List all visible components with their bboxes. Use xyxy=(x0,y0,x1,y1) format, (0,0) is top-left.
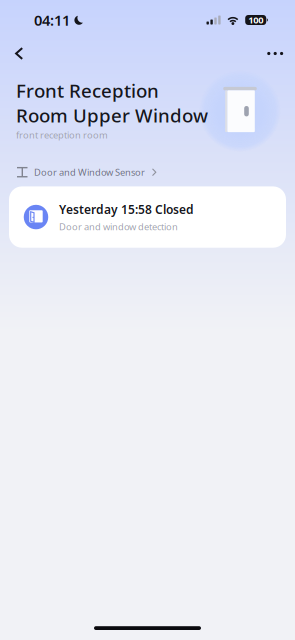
staticText: front reception room xyxy=(16,129,108,141)
staticText: 04:11 xyxy=(34,10,70,30)
staticText: Front Reception xyxy=(16,78,159,103)
staticText: Yesterday 15:58 Closed xyxy=(59,201,194,217)
staticText: Room Upper Window xyxy=(16,103,208,128)
button[interactable]: Door and Window Sensor xyxy=(0,152,171,180)
button[interactable]: More options xyxy=(254,37,295,70)
staticText: Door and window detection xyxy=(59,220,178,233)
button[interactable]: Yesterday 15:58 Closed xyxy=(9,186,286,248)
staticText: Door and Window Sensor xyxy=(34,166,145,178)
button[interactable]: Back xyxy=(0,37,36,70)
staticText: 100 xyxy=(248,14,263,26)
